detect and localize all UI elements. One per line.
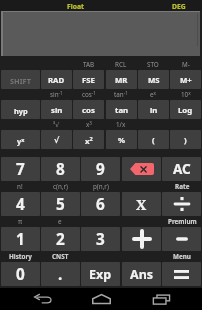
staticText: ³√ <box>53 120 60 129</box>
staticText: n! <box>17 182 23 191</box>
staticText: 8 <box>56 159 65 180</box>
staticText: % <box>118 135 126 146</box>
staticText: 6 <box>96 194 105 215</box>
staticText: FSE <box>82 75 95 86</box>
staticText: 4 <box>16 194 25 215</box>
button[interactable]: Log <box>170 100 201 119</box>
button[interactable]: 4 <box>1 192 40 216</box>
staticText: 3 <box>96 229 105 250</box>
staticText: 9 <box>96 159 105 180</box>
staticText: tan <box>115 105 129 116</box>
staticText: DEG <box>172 2 186 11</box>
button[interactable]: 7 <box>1 157 40 181</box>
button[interactable]: Recent apps <box>150 288 174 310</box>
button[interactable]: SHIFT <box>1 70 40 89</box>
button[interactable]: ln <box>138 100 169 119</box>
button[interactable]: 2 <box>41 227 80 251</box>
button[interactable]: MR <box>106 70 137 89</box>
staticText: RCL <box>115 60 127 69</box>
staticText: tan-1 <box>114 90 128 99</box>
staticText: 0 <box>16 264 25 285</box>
staticText: Exp <box>89 266 112 283</box>
staticText: CNST <box>52 252 69 261</box>
staticText: RAD <box>48 75 65 86</box>
button[interactable]: 1 <box>1 227 40 251</box>
staticText: TAB <box>83 60 95 69</box>
staticText: x3 <box>86 120 92 129</box>
button[interactable]: tan <box>106 100 137 119</box>
button[interactable]: 0 <box>1 262 40 286</box>
staticText: ln <box>150 105 158 116</box>
staticText: Menu <box>173 252 191 261</box>
staticText: 7 <box>16 159 25 180</box>
button[interactable]: Back <box>31 288 55 310</box>
button[interactable]: RAD <box>41 70 72 89</box>
button[interactable]: Plus <box>122 227 161 251</box>
button[interactable]: y^x <box>1 130 40 149</box>
button[interactable]: cos <box>73 100 104 119</box>
staticText: cos <box>82 105 95 116</box>
button[interactable]: Exp <box>81 262 120 286</box>
button[interactable]: Equals <box>162 262 201 286</box>
staticText: ex <box>150 90 156 99</box>
staticText: c(n,r) <box>53 182 68 191</box>
staticText: ( <box>152 135 155 146</box>
button[interactable]: Divide <box>162 192 201 216</box>
staticText: 2 <box>56 229 65 250</box>
staticText: yx <box>17 136 25 146</box>
button[interactable]: Home <box>89 288 113 310</box>
staticText: p(n,r) <box>93 182 109 191</box>
button[interactable]: √ <box>41 130 72 149</box>
button[interactable]: ( <box>138 130 169 149</box>
staticText: e <box>58 217 62 226</box>
button[interactable]: 6 <box>81 192 120 216</box>
button[interactable]: ) <box>170 130 201 149</box>
staticText: sin <box>51 105 63 116</box>
button[interactable]: FSE <box>73 70 104 89</box>
staticText: M+ <box>180 75 192 86</box>
staticText: STO <box>147 60 159 69</box>
staticText: Float <box>67 2 85 11</box>
staticText: x2 <box>85 135 93 146</box>
button[interactable]: x^2 <box>73 130 104 149</box>
button[interactable]: 5 <box>41 192 80 216</box>
staticText: MS <box>148 75 160 86</box>
staticText: Log <box>178 105 193 116</box>
button[interactable]: 9 <box>81 157 120 181</box>
staticText: AC <box>173 160 191 178</box>
staticText: Ans <box>130 266 154 283</box>
staticText: hyp <box>14 106 28 116</box>
staticText: MR <box>115 75 128 86</box>
button[interactable]: hyp <box>1 100 40 119</box>
staticText: X <box>136 195 147 214</box>
staticText: M- <box>182 60 190 69</box>
staticText: Premium <box>168 217 197 226</box>
button[interactable]: MS <box>138 70 169 89</box>
button[interactable]: sin <box>41 100 72 119</box>
staticText: . <box>58 264 63 285</box>
staticText: π <box>18 217 23 226</box>
button[interactable]: 8 <box>41 157 80 181</box>
staticText: 1 <box>16 229 25 250</box>
button[interactable]: 3 <box>81 227 120 251</box>
staticText: Rate <box>175 182 190 191</box>
button[interactable]: Ans <box>122 262 161 286</box>
staticText: cos-1 <box>82 90 96 99</box>
staticText: History <box>9 252 32 261</box>
staticText: sin-1 <box>50 90 63 99</box>
button[interactable]: M+ <box>170 70 201 89</box>
button[interactable]: Backspace <box>122 157 161 181</box>
staticText: 1/x <box>116 120 126 129</box>
staticText: √ <box>54 136 60 145</box>
button[interactable]: Multiply <box>122 192 161 216</box>
staticText: SHIFT <box>10 76 31 86</box>
button[interactable]: Minus <box>162 227 201 251</box>
button[interactable]: AC <box>162 157 201 181</box>
staticText: 10x <box>181 90 191 99</box>
staticText: 5 <box>56 194 65 215</box>
staticText: ) <box>184 135 187 146</box>
button[interactable]: . <box>41 262 80 286</box>
button[interactable]: % <box>106 130 137 149</box>
